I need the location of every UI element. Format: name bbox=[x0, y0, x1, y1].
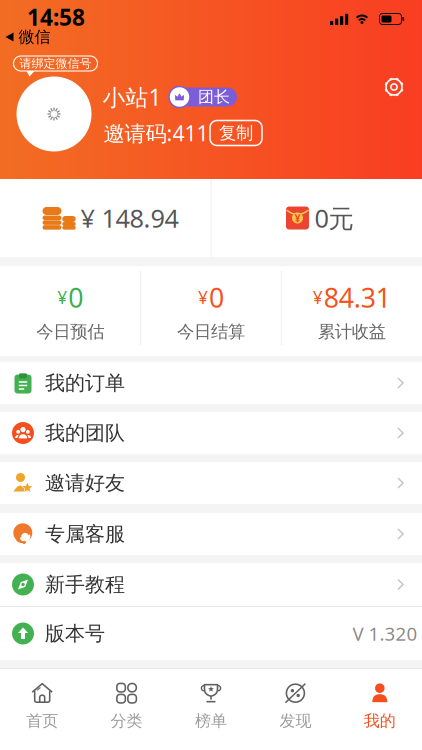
button[interactable]: 榜单 bbox=[169, 678, 253, 734]
staticText: 邀请码:411 bbox=[103, 119, 208, 147]
staticText: 发现 bbox=[279, 711, 311, 731]
staticText: 首页 bbox=[26, 711, 58, 731]
button[interactable]: 专属客服 bbox=[0, 513, 422, 555]
button[interactable]: ¥ 148.94 bbox=[0, 179, 210, 257]
staticText: ¥ bbox=[313, 286, 323, 309]
button[interactable]: 首页 bbox=[0, 678, 84, 734]
button[interactable]: ¥ bbox=[141, 266, 281, 356]
staticText: 累计收益 bbox=[318, 321, 386, 342]
button[interactable]: 版本号 bbox=[0, 607, 422, 660]
staticText: 榜单 bbox=[195, 711, 227, 731]
staticText: 0 bbox=[68, 280, 83, 315]
staticText: 复制 bbox=[219, 122, 253, 144]
staticText: 14:58 bbox=[27, 2, 85, 32]
staticText: 我的团队 bbox=[45, 421, 125, 445]
staticText: 今日预估 bbox=[36, 321, 104, 342]
staticText: ¥ bbox=[198, 286, 208, 309]
button[interactable]: 邀请好友 bbox=[0, 462, 422, 504]
staticText: V 1.320 bbox=[352, 621, 417, 646]
button[interactable]: 分类 bbox=[84, 678, 169, 734]
staticText: 0元 bbox=[314, 201, 353, 235]
button[interactable]: 请绑定微信号 bbox=[12, 55, 98, 76]
button[interactable]: 我的团队 bbox=[0, 412, 422, 454]
button[interactable]: ¥ bbox=[211, 179, 421, 257]
staticText: 我的订单 bbox=[45, 371, 125, 395]
staticText: 版本号 bbox=[45, 621, 105, 646]
button[interactable]: ¥ bbox=[282, 266, 422, 356]
staticText: 邀请好友 bbox=[45, 471, 125, 495]
staticText: 分类 bbox=[111, 711, 143, 731]
staticText: 0 bbox=[209, 280, 224, 315]
staticText: 新手教程 bbox=[45, 572, 125, 597]
button[interactable]: 我的订单 bbox=[0, 362, 422, 404]
button[interactable]: 我的 bbox=[338, 678, 422, 734]
staticText: 84.31 bbox=[324, 280, 391, 315]
button[interactable]: 新手教程 bbox=[0, 563, 422, 606]
button[interactable]: 发现 bbox=[253, 678, 338, 734]
staticText: ¥ bbox=[294, 211, 300, 225]
staticText: 我的 bbox=[364, 711, 396, 731]
staticText: 小站1 bbox=[102, 82, 161, 112]
staticText: 今日结算 bbox=[177, 321, 245, 342]
staticText: ¥ 148.94 bbox=[80, 201, 178, 235]
staticText: 请绑定微信号 bbox=[19, 56, 91, 71]
staticText: ¥ bbox=[57, 286, 67, 309]
button[interactable]: 设置 bbox=[384, 77, 404, 97]
staticText: 团长 bbox=[198, 87, 230, 107]
staticText: 微信 bbox=[18, 27, 50, 47]
staticText: 专属客服 bbox=[45, 522, 125, 546]
button[interactable]: ¥ bbox=[0, 266, 140, 356]
button[interactable]: 复制 bbox=[210, 120, 262, 145]
